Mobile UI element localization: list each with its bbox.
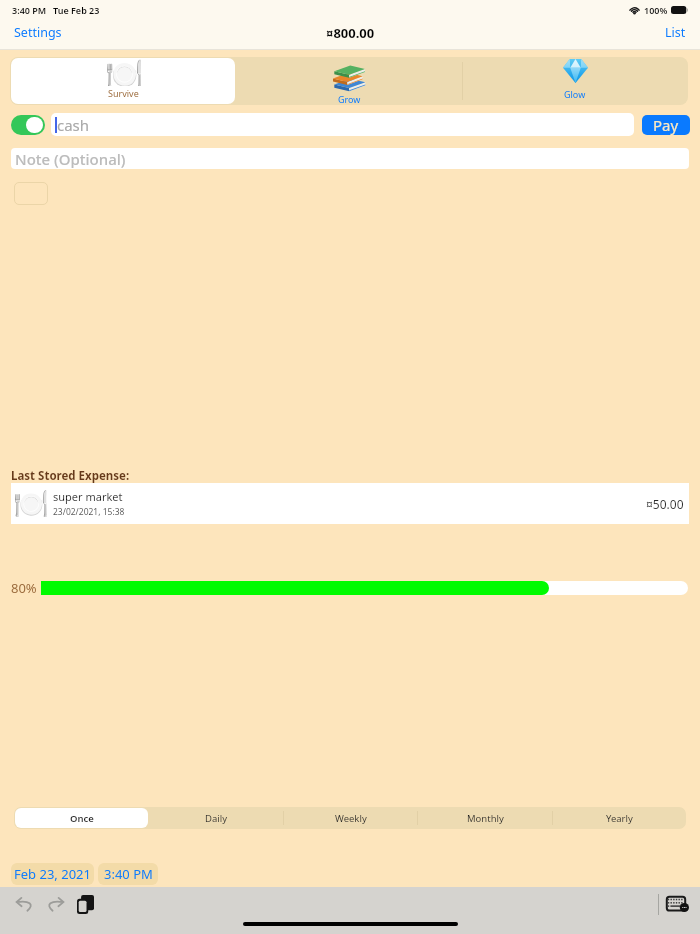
button[interactable]: Settings (14, 22, 62, 42)
staticText: Glow (564, 88, 586, 100)
button[interactable]: Grow (237, 58, 461, 104)
button[interactable]: Attachment (14, 182, 48, 205)
button[interactable]: List (665, 22, 686, 42)
button[interactable]: 3:40 PM (98, 863, 158, 885)
button[interactable]: Feb 23, 2021 (11, 863, 94, 885)
staticText: 🍽️ (13, 487, 49, 521)
button[interactable]: Paste (72, 891, 98, 917)
button[interactable]: Keyboard (665, 894, 689, 914)
button[interactable]: cash (51, 113, 634, 136)
staticText: Weekly (335, 812, 367, 825)
button[interactable]: Undo (12, 891, 38, 917)
button[interactable]: Once (15, 808, 148, 828)
staticText: ¤50.00 (646, 496, 684, 512)
staticText: Yearly (606, 812, 633, 825)
staticText: Once (70, 812, 94, 825)
button[interactable]: Monthly (419, 808, 551, 828)
staticText: Grow (338, 93, 361, 104)
button[interactable]: Pay (642, 115, 690, 135)
staticText: 3:40 PM (12, 4, 47, 16)
staticText: List (665, 24, 686, 41)
button[interactable]: 🍽️ (11, 483, 689, 524)
button[interactable]: 🍽️ (11, 58, 235, 104)
staticText: cash (57, 115, 90, 135)
staticText: ¤800.00 (326, 24, 375, 42)
button[interactable]: Cash toggle (11, 115, 45, 135)
staticText: 23/02/2021, 15:38 (53, 506, 125, 518)
staticText: Daily (205, 812, 228, 825)
staticText: Note (Optional) (15, 149, 126, 169)
button[interactable]: Redo (42, 891, 68, 917)
staticText: super market (53, 489, 123, 504)
staticText: Settings (14, 24, 62, 41)
staticText: Monthly (467, 812, 504, 825)
button[interactable]: Daily (150, 808, 283, 828)
staticText: Pay (653, 115, 679, 135)
staticText: Feb 23, 2021 (14, 865, 91, 883)
staticText: Survive (108, 87, 139, 99)
staticText: 80% (11, 579, 37, 597)
staticText: 🍽️ (105, 58, 141, 86)
button[interactable]: Weekly (285, 808, 417, 828)
staticText: 100% (644, 4, 668, 16)
button[interactable]: Yearly (553, 808, 685, 828)
button[interactable]: Glow (463, 58, 687, 104)
staticText: 3:40 PM (104, 865, 153, 883)
staticText: Last Stored Expense: (11, 468, 130, 484)
button[interactable]: Note (Optional) (11, 148, 689, 169)
staticText: Tue Feb 23 (53, 4, 100, 16)
